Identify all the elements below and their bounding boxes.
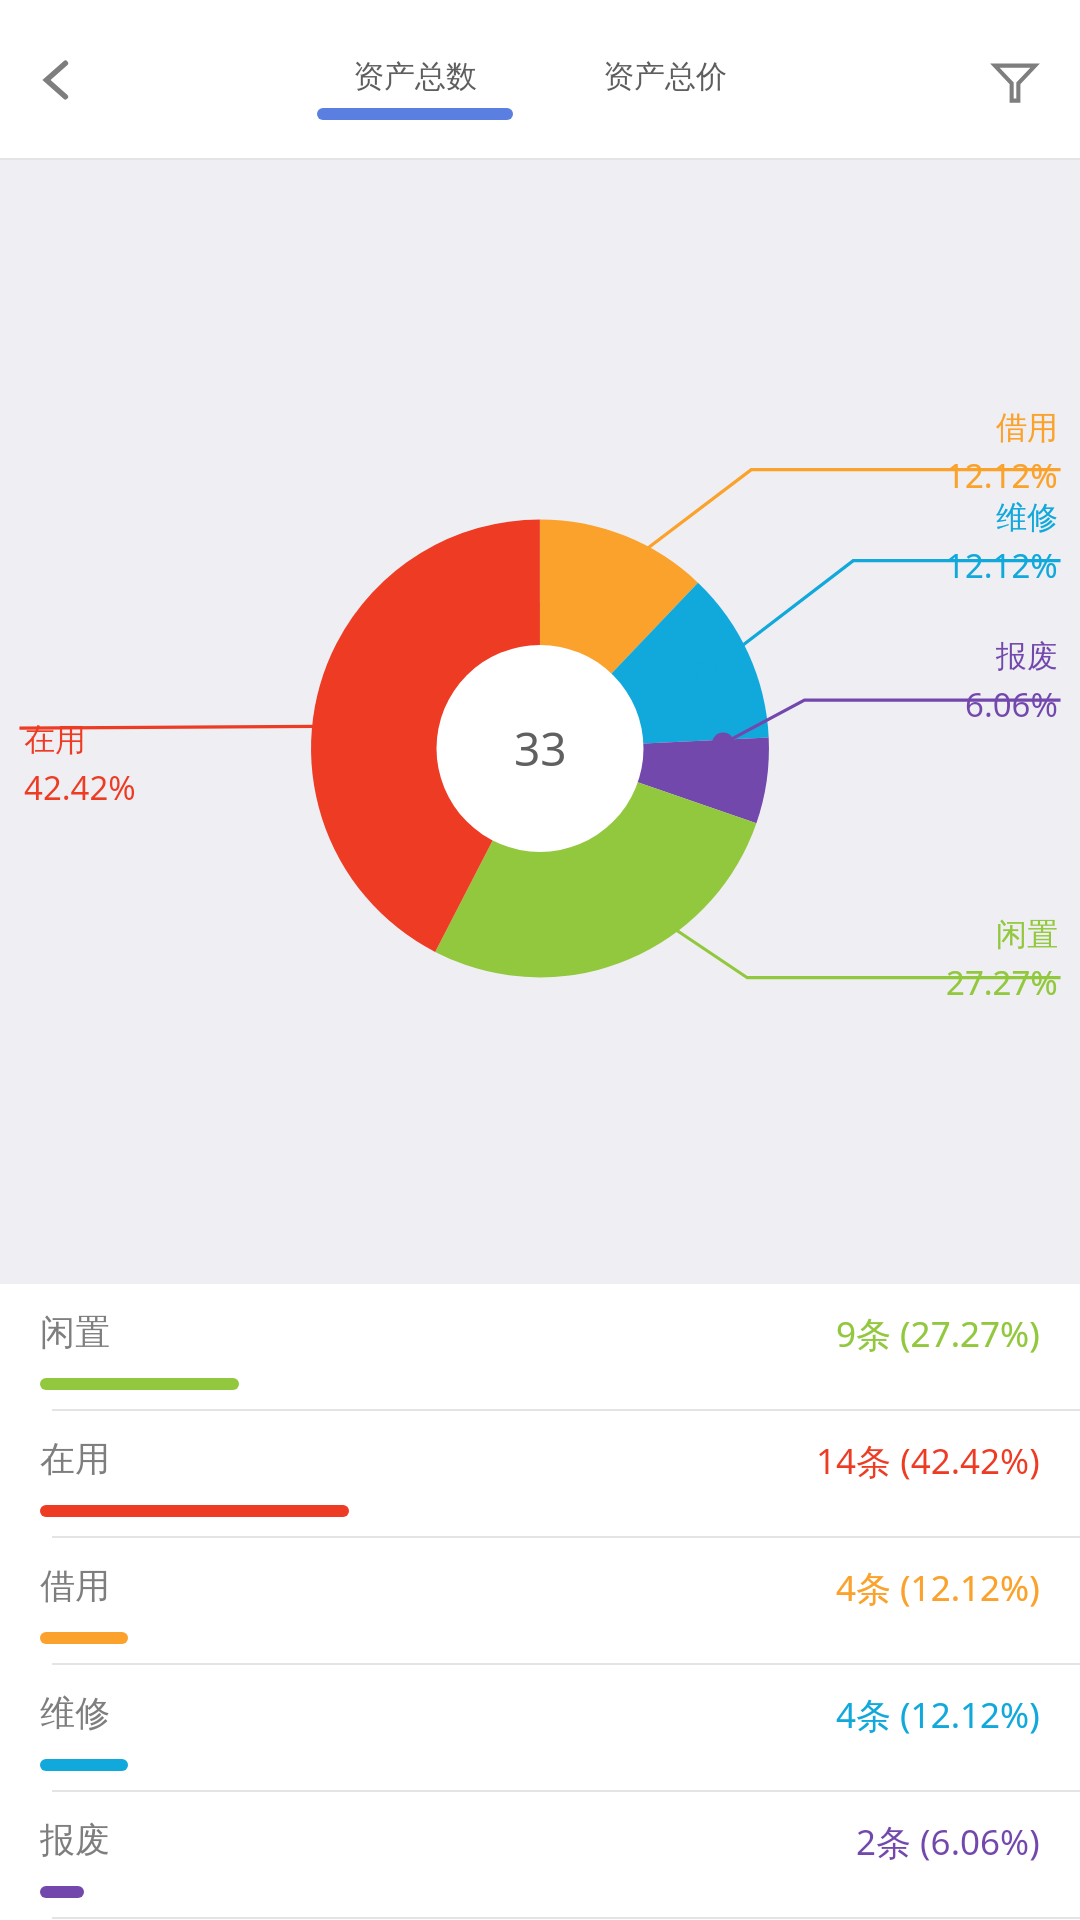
- staticText: 14条 (42.42%): [816, 1437, 1040, 1485]
- staticText: 报废: [996, 637, 1058, 676]
- button[interactable]: 在用: [0, 1411, 1080, 1538]
- staticText: 维修: [40, 1691, 110, 1735]
- staticText: 借用: [40, 1564, 110, 1608]
- staticText: 9条 (27.27%): [836, 1310, 1040, 1358]
- staticText: 在用: [40, 1437, 110, 1481]
- staticText: 4条 (12.12%): [836, 1691, 1040, 1739]
- button[interactable]: 闲置: [0, 1284, 1080, 1411]
- button[interactable]: 资产总数: [303, 57, 527, 120]
- button[interactable]: 报废: [0, 1792, 1080, 1919]
- staticText: 33: [514, 717, 567, 780]
- staticText: 报废: [40, 1818, 110, 1862]
- staticText: 借用: [996, 408, 1058, 447]
- staticText: 闲置: [40, 1310, 110, 1354]
- staticText: 4条 (12.12%): [836, 1564, 1040, 1612]
- staticText: 闲置: [996, 915, 1058, 954]
- staticText: 12.12%: [946, 453, 1058, 498]
- staticText: 6.06%: [965, 682, 1058, 727]
- button[interactable]: 资产总价: [553, 57, 777, 120]
- staticText: 资产总价: [603, 57, 727, 96]
- button[interactable]: Filter: [972, 37, 1058, 123]
- staticText: 资产总数: [353, 57, 477, 96]
- button[interactable]: 借用: [0, 1538, 1080, 1665]
- staticText: 12.12%: [946, 543, 1058, 588]
- staticText: 2条 (6.06%): [856, 1818, 1040, 1866]
- staticText: 维修: [996, 498, 1058, 537]
- staticText: 42.42%: [24, 765, 136, 810]
- button[interactable]: Back: [14, 37, 100, 123]
- staticText: 在用: [24, 720, 86, 759]
- staticText: 27.27%: [946, 960, 1058, 1005]
- button[interactable]: 维修: [0, 1665, 1080, 1792]
